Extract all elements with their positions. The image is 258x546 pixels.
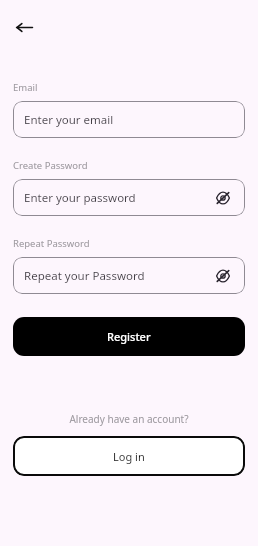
button[interactable]: Register (13, 317, 245, 356)
button[interactable]: Back (10, 13, 38, 41)
button[interactable]: Repeat your Password (13, 257, 245, 294)
staticText: Email (13, 81, 38, 94)
staticText: Enter your password (24, 190, 136, 206)
button[interactable]: Enter your password (13, 179, 245, 216)
button[interactable]: Show password (212, 187, 234, 209)
staticText: Repeat your Password (24, 268, 145, 284)
button[interactable]: Log in (13, 436, 245, 476)
staticText: Repeat Password (13, 237, 90, 250)
staticText: Already have an account? (0, 412, 258, 426)
staticText: Log in (113, 449, 145, 464)
staticText: Create Password (13, 159, 88, 172)
staticText: Enter your email (24, 112, 114, 128)
button[interactable]: Show password (212, 265, 234, 287)
staticText: Register (107, 329, 151, 344)
button[interactable]: Enter your email (13, 101, 245, 138)
